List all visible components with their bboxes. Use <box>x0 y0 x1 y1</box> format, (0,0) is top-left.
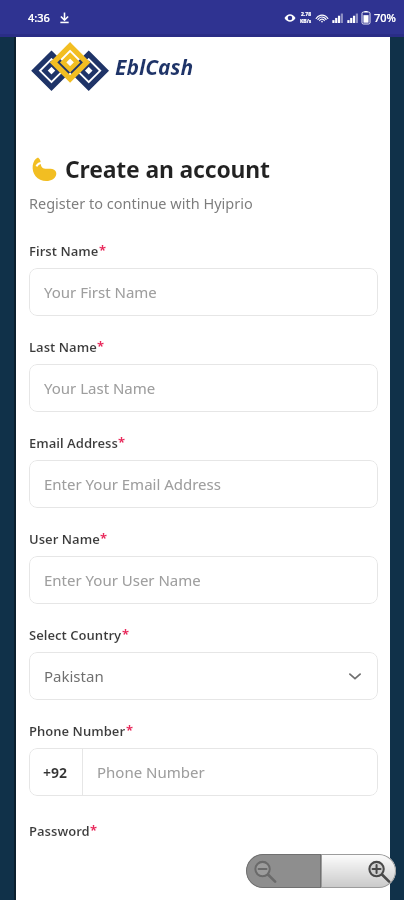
staticText: Enter Your Email Address <box>44 474 221 494</box>
staticText: 4:36 <box>28 10 50 25</box>
staticText: * <box>99 241 107 259</box>
button[interactable]: EblCash <box>34 44 194 90</box>
staticText: * <box>97 337 105 355</box>
other: Open country list <box>347 668 363 684</box>
staticText: * <box>118 433 126 451</box>
staticText: Create an account <box>65 153 270 184</box>
staticText: User Name <box>29 530 100 548</box>
staticText: First Name <box>29 242 99 260</box>
staticText: EblCash <box>115 53 194 82</box>
button[interactable]: Zoom out <box>246 854 321 888</box>
staticText: +92 <box>43 763 68 782</box>
staticText: Your Last Name <box>44 378 156 398</box>
staticText: Password <box>29 822 90 840</box>
staticText: Register to continue with Hyiprio <box>29 193 253 213</box>
staticText: Phone Number <box>97 762 205 782</box>
staticText: * <box>122 625 130 643</box>
staticText: Pakistan <box>44 666 347 686</box>
staticText: Enter Your User Name <box>44 570 201 590</box>
button[interactable]: Enter Your User Name <box>29 556 378 604</box>
staticText: * <box>90 821 98 839</box>
button[interactable]: Pakistan <box>29 652 378 700</box>
button[interactable]: Your Last Name <box>29 364 378 412</box>
staticText: * <box>100 529 108 547</box>
staticText: Select Country <box>29 626 122 644</box>
staticText: Phone Number <box>29 722 126 740</box>
button[interactable]: Zoom in <box>321 854 396 888</box>
staticText: Your First Name <box>44 282 157 302</box>
staticText: 2.78 <box>301 11 311 18</box>
staticText: KB/s <box>300 18 312 25</box>
staticText: Email Address <box>29 434 118 452</box>
staticText: 70% <box>374 10 396 25</box>
button[interactable]: +92 <box>29 748 378 796</box>
button[interactable]: Enter Your Email Address <box>29 460 378 508</box>
button[interactable]: Your First Name <box>29 268 378 316</box>
staticText: * <box>126 721 134 739</box>
staticText: Last Name <box>29 338 97 356</box>
